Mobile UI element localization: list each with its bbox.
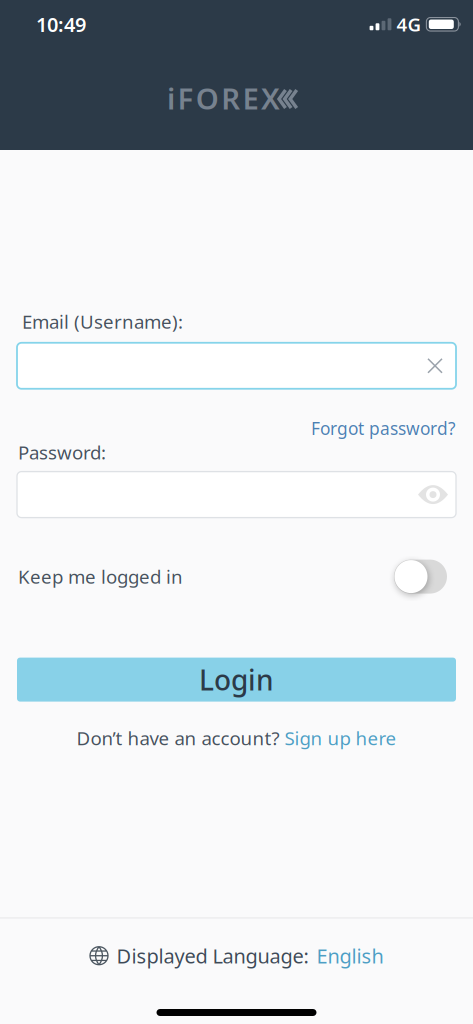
staticText: Don’t have an account?: [76, 726, 279, 750]
staticText: Login: [199, 661, 274, 698]
staticText: Keep me logged in: [18, 564, 183, 589]
staticText: 10:49: [36, 11, 86, 38]
staticText: i: [167, 78, 175, 117]
button[interactable]: [418, 484, 456, 506]
staticText: Displayed Language:: [116, 942, 308, 969]
staticText: Email (Username):: [22, 309, 183, 334]
staticText: R: [221, 78, 240, 117]
button[interactable]: Sign up here: [284, 726, 396, 750]
staticText: Sign up here: [284, 726, 396, 750]
button[interactable]: Forgot password?: [311, 417, 456, 440]
staticText: X: [261, 78, 280, 117]
button[interactable]: Login: [17, 658, 456, 702]
staticText: O: [196, 78, 219, 117]
staticText: Password:: [18, 440, 106, 465]
staticText: F: [177, 78, 193, 117]
button[interactable]: [394, 560, 447, 594]
staticText: 4G: [396, 12, 421, 37]
staticText: Forgot password?: [311, 417, 456, 440]
button[interactable]: [428, 359, 456, 373]
staticText: E: [243, 78, 259, 117]
staticText: English: [316, 942, 383, 969]
button[interactable]: Displayed Language:: [89, 942, 383, 969]
